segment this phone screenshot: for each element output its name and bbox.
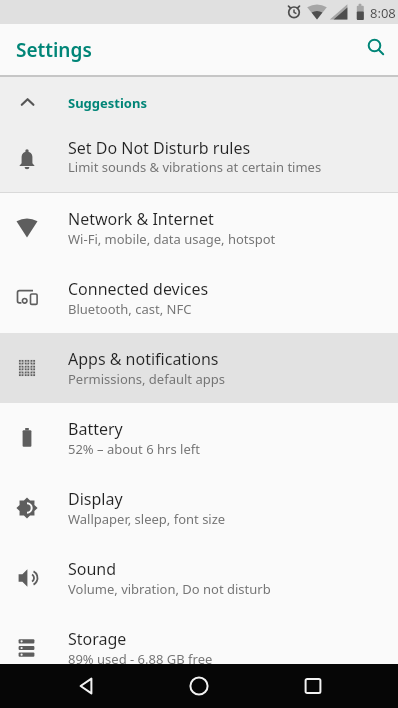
- button[interactable]: Display: [0, 473, 398, 543]
- staticText: Apps & notifications: [68, 348, 219, 370]
- staticText: Bluetooth, cast, NFC: [68, 300, 192, 318]
- staticText: Wi-Fi, mobile, data usage, hotspot: [68, 230, 276, 248]
- button[interactable]: Storage: [0, 613, 398, 683]
- staticText: 89% used - 6.88 GB free: [68, 650, 213, 668]
- staticText: Limit sounds & vibrations at certain tim…: [68, 158, 322, 176]
- staticText: Storage: [68, 628, 127, 650]
- staticText: Suggestions: [68, 94, 147, 112]
- staticText: 8:08: [370, 4, 396, 22]
- button[interactable]: Apps & notifications: [0, 333, 398, 403]
- staticText: Volume, vibration, Do not disturb: [68, 580, 271, 598]
- staticText: Sound: [68, 558, 117, 580]
- staticText: Wallpaper, sleep, font size: [68, 510, 226, 528]
- staticText: Settings: [16, 37, 92, 63]
- button[interactable]: Battery: [0, 403, 398, 473]
- button[interactable]: Connected devices: [0, 263, 398, 333]
- button[interactable]: [293, 666, 333, 706]
- staticText: Display: [68, 488, 123, 510]
- staticText: Permissions, default apps: [68, 370, 225, 388]
- button[interactable]: Network & Internet: [0, 193, 398, 263]
- button[interactable]: [66, 666, 106, 706]
- staticText: Connected devices: [68, 278, 209, 300]
- staticText: Battery: [68, 418, 123, 440]
- button[interactable]: Suggestions: [0, 88, 398, 116]
- staticText: 52% – about 6 hrs left: [68, 440, 200, 458]
- button[interactable]: Set Do Not Disturb rules: [0, 116, 398, 192]
- staticText: Set Do Not Disturb rules: [68, 137, 251, 159]
- button[interactable]: [360, 34, 392, 66]
- button[interactable]: [179, 666, 219, 706]
- button[interactable]: Sound: [0, 543, 398, 613]
- staticText: Network & Internet: [68, 208, 214, 230]
